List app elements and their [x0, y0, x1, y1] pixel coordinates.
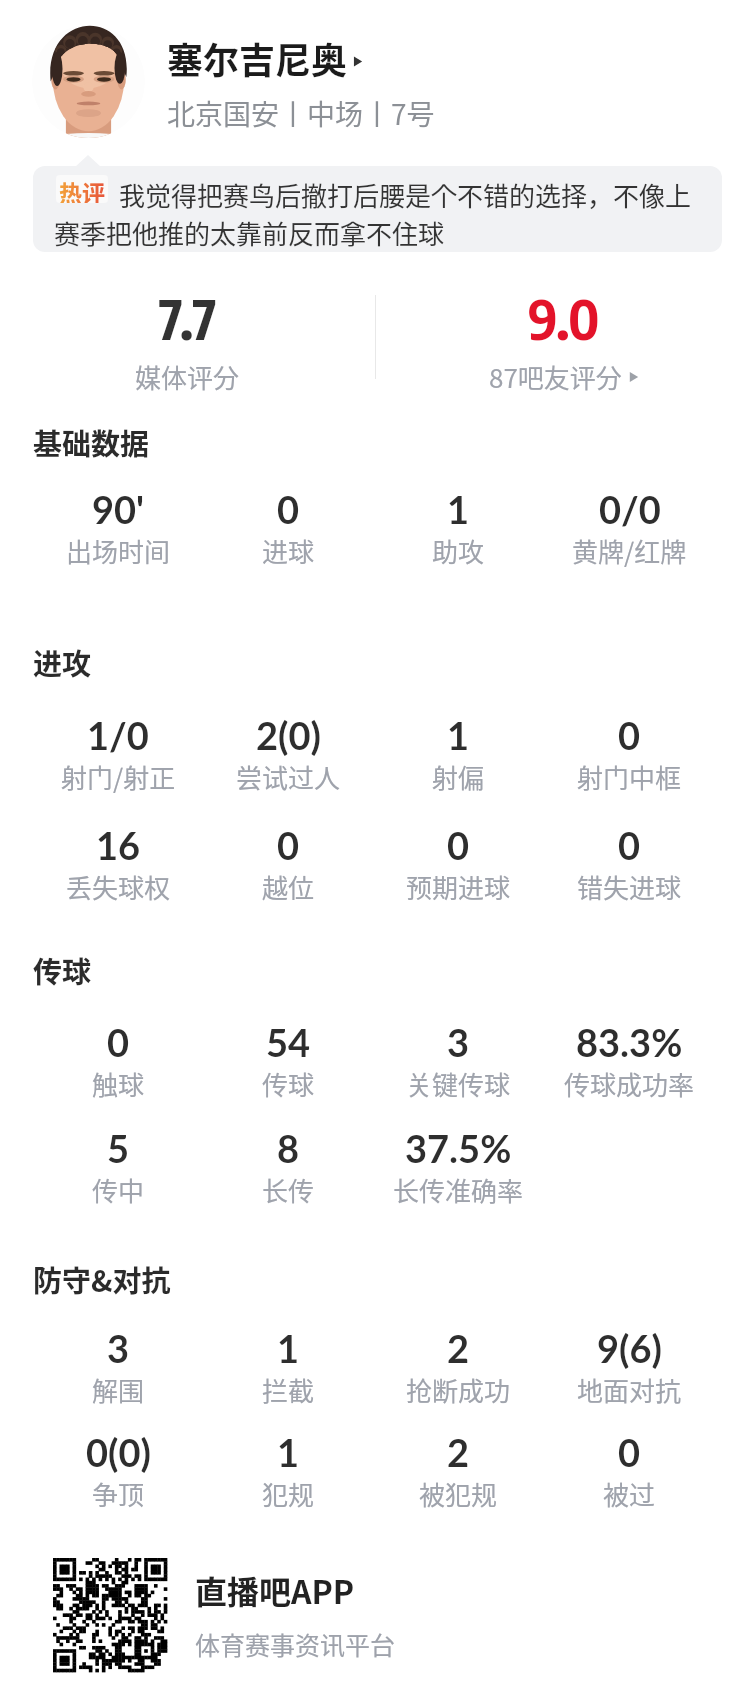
staticText: 8 — [277, 1125, 300, 1171]
staticText: 2(0) — [256, 712, 321, 758]
staticText: 出场时间 — [66, 532, 171, 570]
staticText: 关键传球 — [406, 1065, 511, 1103]
button[interactable]: 1 — [373, 486, 544, 570]
button[interactable]: 0 — [373, 822, 544, 906]
button[interactable]: 3 — [373, 1019, 544, 1103]
staticText: 错失进球 — [577, 868, 682, 906]
staticText: 丢失球权 — [66, 868, 171, 906]
staticText: 0 — [447, 822, 470, 868]
staticText: 0 — [618, 1429, 641, 1475]
staticText: 黄牌/红牌 — [572, 532, 687, 570]
staticText: 媒体评分 — [135, 358, 240, 396]
staticText: 1 — [277, 1325, 300, 1371]
staticText: 3 — [107, 1325, 130, 1371]
staticText: 传中 — [92, 1171, 145, 1209]
staticText: 2 — [447, 1429, 470, 1475]
staticText: 拦截 — [262, 1371, 315, 1409]
button[interactable]: 1 — [203, 1429, 373, 1513]
staticText: 北京国安丨中场丨7号 — [167, 93, 435, 134]
staticText: 塞尔吉尼奥 — [167, 32, 348, 84]
staticText: 触球 — [92, 1065, 145, 1103]
staticText: 1 — [447, 486, 470, 532]
staticText: 16 — [96, 822, 141, 868]
button[interactable]: 0/0 — [544, 486, 715, 570]
staticText: 传球成功率 — [564, 1065, 695, 1103]
staticText: 0 — [618, 712, 641, 758]
staticText: 37.5% — [405, 1125, 512, 1171]
button[interactable]: 1 — [203, 1325, 373, 1409]
staticText: 5 — [107, 1125, 130, 1171]
button[interactable]: 9.0 — [375, 284, 750, 396]
staticText: 直播吧APP — [195, 1567, 355, 1613]
button[interactable]: 0 — [33, 1019, 203, 1103]
staticText: 犯规 — [262, 1475, 315, 1513]
staticText: 被过 — [603, 1475, 656, 1513]
button[interactable]: 0 — [544, 712, 715, 796]
button[interactable]: 9(6) — [544, 1325, 715, 1409]
staticText: 83.3% — [576, 1019, 683, 1065]
button[interactable]: 塞尔吉尼奥 — [167, 32, 365, 84]
staticText: 9(6) — [597, 1325, 662, 1371]
staticText: 0 — [107, 1019, 130, 1065]
staticText: 0(0) — [86, 1429, 151, 1475]
button[interactable]: 16 — [33, 822, 203, 906]
staticText: 0 — [618, 822, 641, 868]
button[interactable]: 2 — [373, 1429, 544, 1513]
staticText: 地面对抗 — [577, 1371, 682, 1409]
staticText: 我觉得把赛鸟后撤打后腰是个不错的选择，不像上 — [119, 176, 692, 214]
staticText: 进攻 — [33, 641, 92, 683]
staticText: 越位 — [262, 868, 315, 906]
staticText: 3 — [447, 1019, 470, 1065]
button[interactable]: 1 — [373, 712, 544, 796]
button[interactable]: 3 — [33, 1325, 203, 1409]
staticText: 射门中框 — [577, 758, 682, 796]
staticText: 射门/射正 — [61, 758, 176, 796]
staticText: 进球 — [262, 532, 315, 570]
button[interactable]: 2 — [373, 1325, 544, 1409]
staticText: 争顶 — [92, 1475, 145, 1513]
staticText: 1 — [447, 712, 470, 758]
staticText: 0 — [277, 486, 300, 532]
button[interactable]: 7.7 — [0, 284, 375, 396]
button[interactable]: 0 — [203, 486, 373, 570]
staticText: 赛季把他推的太靠前反而拿不住球 — [54, 214, 445, 252]
staticText: 助攻 — [432, 532, 485, 570]
button[interactable]: 0(0) — [33, 1429, 203, 1513]
staticText: 1/0 — [87, 712, 149, 758]
button[interactable]: 90' — [33, 486, 203, 570]
staticText: 防守&对抗 — [33, 1258, 171, 1300]
staticText: 1 — [277, 1429, 300, 1475]
staticText: 体育赛事资讯平台 — [195, 1626, 396, 1662]
staticText: 90' — [92, 486, 145, 532]
button[interactable]: 0 — [544, 822, 715, 906]
button[interactable]: 5 — [33, 1125, 203, 1209]
staticText: 抢断成功 — [406, 1371, 511, 1409]
button[interactable]: 37.5% — [373, 1125, 544, 1209]
button[interactable]: 8 — [203, 1125, 373, 1209]
button[interactable]: 0 — [544, 1429, 715, 1513]
staticText: 热评 — [59, 175, 105, 203]
button[interactable]: 0 — [203, 822, 373, 906]
button[interactable]: 2(0) — [203, 712, 373, 796]
staticText: 长传准确率 — [393, 1171, 524, 1209]
staticText: 7.7 — [159, 284, 217, 351]
staticText: 被犯规 — [419, 1475, 498, 1513]
staticText: 传球 — [33, 949, 92, 991]
staticText: 87吧友评分 — [489, 358, 622, 396]
staticText: 9.0 — [528, 284, 600, 351]
staticText: 尝试过人 — [236, 758, 341, 796]
staticText: 射偏 — [432, 758, 485, 796]
staticText: 0 — [277, 822, 300, 868]
button[interactable]: 54 — [203, 1019, 373, 1103]
staticText: 解围 — [92, 1371, 145, 1409]
staticText: 0/0 — [599, 486, 661, 532]
staticText: 预期进球 — [406, 868, 511, 906]
button[interactable]: 1/0 — [33, 712, 203, 796]
staticText: 2 — [447, 1325, 470, 1371]
button[interactable]: 83.3% — [544, 1019, 715, 1103]
staticText: 长传 — [262, 1171, 315, 1209]
staticText: 基础数据 — [33, 421, 150, 463]
staticText: 传球 — [262, 1065, 315, 1103]
staticText: 54 — [266, 1019, 311, 1065]
